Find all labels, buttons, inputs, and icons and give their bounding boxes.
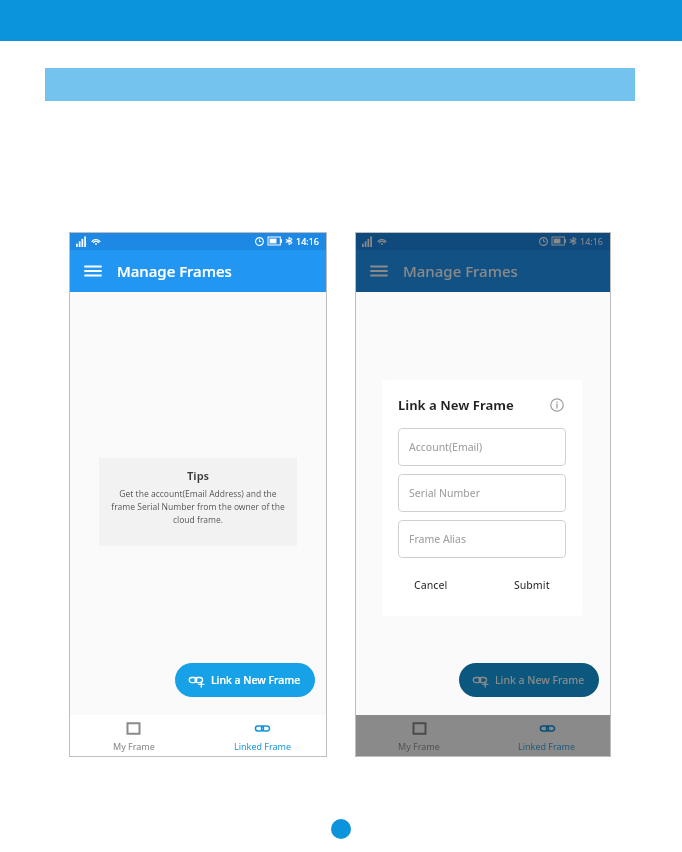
staticText: Get the account(Email Address) and the f… <box>107 488 289 526</box>
button[interactable]: Cancel <box>410 574 452 596</box>
button[interactable]: Submit <box>510 574 554 596</box>
staticText: Linked Frame <box>518 740 576 752</box>
staticText: Tips <box>472 468 495 483</box>
button[interactable]: Menu <box>365 257 393 285</box>
button[interactable]: Info <box>548 396 566 414</box>
staticText: Link a New Frame <box>495 673 585 687</box>
button[interactable]: Linked Frame <box>198 715 327 757</box>
staticText: My Frame <box>398 740 440 752</box>
staticText: Account(Email) <box>409 440 483 454</box>
staticText: Frame Alias <box>409 532 466 546</box>
staticText: My Frame <box>113 740 155 752</box>
button[interactable]: Menu <box>79 257 107 285</box>
staticText: Tips <box>187 468 210 483</box>
button[interactable]: Linked Frame <box>483 715 611 757</box>
button[interactable]: Link a New Frame <box>459 663 599 697</box>
staticText: 14:16 <box>296 235 320 247</box>
staticText: Link a New Frame <box>211 673 301 687</box>
button[interactable]: Account(Email) <box>398 428 566 466</box>
staticText: Serial Number <box>409 486 481 500</box>
staticText: Submit <box>514 578 550 592</box>
button[interactable]: Serial Number <box>398 474 566 512</box>
staticText: Get the account(Email Address) and the f… <box>392 488 574 526</box>
button[interactable]: Frame Alias <box>398 520 566 558</box>
staticText: Linked Frame <box>234 740 292 752</box>
staticText: 14:16 <box>580 235 604 247</box>
button[interactable]: My Frame <box>355 715 483 757</box>
staticText: Manage Frames <box>403 261 518 281</box>
button[interactable]: Link a New Frame <box>175 663 315 697</box>
button[interactable]: My Frame <box>69 715 198 757</box>
staticText: Cancel <box>414 578 448 592</box>
staticText: Manage Frames <box>117 261 232 281</box>
staticText: Link a New Frame <box>398 396 514 414</box>
